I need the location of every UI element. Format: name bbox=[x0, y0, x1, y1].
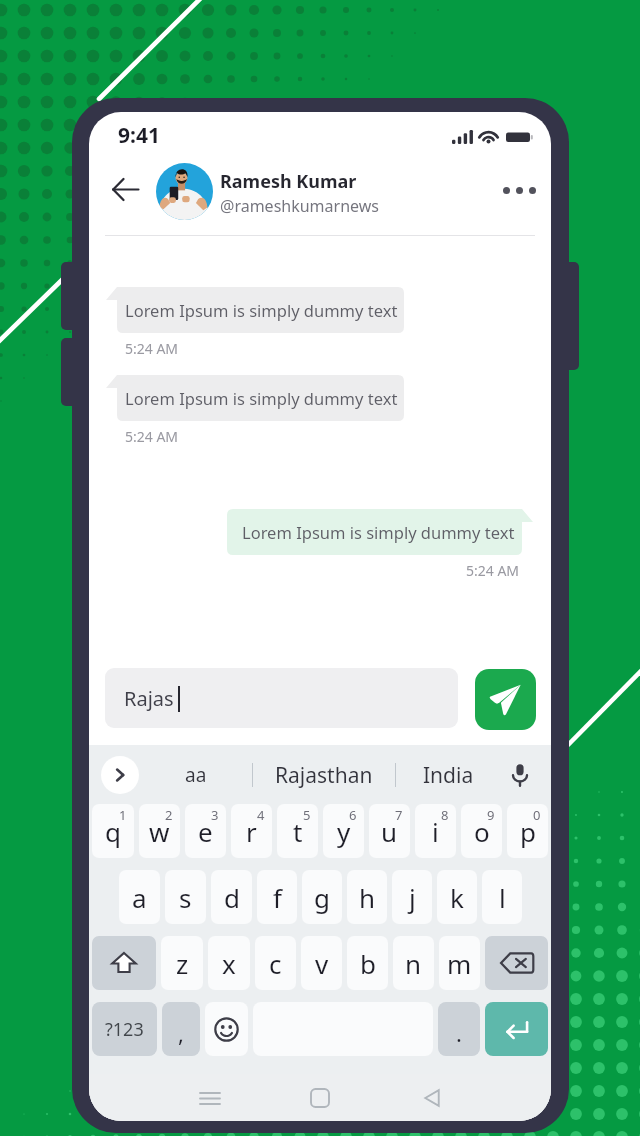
button[interactable]: i bbox=[415, 804, 456, 858]
staticText: b bbox=[360, 946, 376, 981]
button[interactable]: p bbox=[507, 804, 548, 858]
staticText: d bbox=[224, 880, 240, 915]
button[interactable]: r bbox=[231, 804, 272, 858]
button[interactable]: . bbox=[438, 1002, 480, 1056]
button[interactable]: y bbox=[323, 804, 364, 858]
staticText: l bbox=[499, 880, 506, 915]
button[interactable]: s bbox=[165, 870, 206, 924]
button[interactable]: Enter bbox=[485, 1002, 548, 1056]
button[interactable]: India bbox=[396, 755, 501, 795]
button[interactable]: h bbox=[347, 870, 387, 924]
button[interactable]: a bbox=[119, 870, 160, 924]
button[interactable]: c bbox=[255, 936, 296, 990]
button[interactable]: Lorem Ipsum is simply dummy text bbox=[227, 509, 533, 555]
staticText: r bbox=[246, 814, 257, 849]
button[interactable]: f bbox=[257, 870, 297, 924]
staticText: 6 bbox=[349, 806, 357, 824]
button[interactable]: Recent apps bbox=[187, 1075, 233, 1121]
staticText: q bbox=[105, 814, 121, 849]
staticText: Lorem Ipsum is simply dummy text bbox=[242, 521, 515, 543]
button[interactable]: u bbox=[369, 804, 410, 858]
button[interactable]: k bbox=[437, 870, 477, 924]
button[interactable]: Backspace bbox=[485, 936, 548, 990]
button[interactable]: More options bbox=[491, 169, 547, 211]
staticText: j bbox=[409, 880, 416, 915]
staticText: x bbox=[222, 946, 236, 981]
button[interactable]: Emoji bbox=[205, 1002, 248, 1056]
staticText: t bbox=[293, 814, 303, 849]
button[interactable]: Send bbox=[475, 669, 536, 730]
staticText: g bbox=[314, 880, 330, 915]
button[interactable]: q bbox=[92, 804, 134, 858]
staticText: u bbox=[381, 814, 398, 849]
button[interactable]: e bbox=[185, 804, 226, 858]
staticText: 1 bbox=[119, 806, 127, 824]
button[interactable]: Voice input bbox=[501, 756, 539, 794]
staticText: 5:24 AM bbox=[466, 561, 520, 580]
staticText: c bbox=[269, 946, 282, 981]
button[interactable]: Lorem Ipsum is simply dummy text bbox=[106, 287, 404, 333]
button[interactable]: t bbox=[277, 804, 318, 858]
button[interactable]: b bbox=[347, 936, 388, 990]
staticText: ?123 bbox=[105, 1017, 144, 1042]
button[interactable]: Shift bbox=[92, 936, 156, 990]
staticText: @rameshkumarnews bbox=[220, 195, 379, 217]
staticText: w bbox=[149, 814, 170, 849]
staticText: Rajas bbox=[124, 685, 174, 712]
button[interactable]: g bbox=[302, 870, 342, 924]
button[interactable]: Rajasthan bbox=[253, 755, 395, 795]
staticText: Lorem Ipsum is simply dummy text bbox=[125, 299, 398, 321]
staticText: . bbox=[456, 1018, 462, 1048]
staticText: o bbox=[474, 814, 490, 849]
staticText: 9:41 bbox=[118, 121, 160, 150]
staticText: 2 bbox=[165, 806, 173, 824]
staticText: y bbox=[337, 814, 351, 849]
staticText: 8 bbox=[441, 806, 449, 824]
staticText: 4 bbox=[257, 806, 265, 824]
staticText: Lorem Ipsum is simply dummy text bbox=[125, 387, 398, 409]
button[interactable]: Back bbox=[409, 1075, 455, 1121]
staticText: a bbox=[132, 880, 147, 915]
staticText: p bbox=[520, 814, 536, 849]
button[interactable]: Back bbox=[104, 168, 146, 210]
staticText: Rajasthan bbox=[275, 761, 373, 790]
staticText: India bbox=[423, 761, 474, 790]
button[interactable]: Expand toolbar bbox=[101, 756, 139, 794]
button[interactable]: w bbox=[139, 804, 180, 858]
button[interactable]: n bbox=[393, 936, 434, 990]
staticText: 7 bbox=[395, 806, 403, 824]
staticText: Ramesh Kumar bbox=[220, 169, 357, 194]
staticText: z bbox=[176, 946, 189, 981]
staticText: 9 bbox=[487, 806, 495, 824]
staticText: 5:24 AM bbox=[125, 339, 179, 358]
staticText: 5:24 AM bbox=[125, 427, 179, 446]
button[interactable]: aa bbox=[139, 755, 252, 795]
button[interactable]: Lorem Ipsum is simply dummy text bbox=[106, 375, 404, 421]
staticText: , bbox=[178, 1018, 184, 1048]
button[interactable]: o bbox=[461, 804, 502, 858]
staticText: v bbox=[315, 946, 329, 981]
staticText: 0 bbox=[533, 806, 541, 824]
button[interactable]: ?123 bbox=[92, 1002, 157, 1056]
staticText: m bbox=[447, 946, 472, 981]
staticText: aa bbox=[185, 762, 207, 788]
staticText: e bbox=[198, 814, 213, 849]
button[interactable]: d bbox=[211, 870, 252, 924]
staticText: 5 bbox=[303, 806, 311, 824]
button[interactable]: m bbox=[439, 936, 480, 990]
button[interactable]: z bbox=[161, 936, 203, 990]
button[interactable]: x bbox=[208, 936, 250, 990]
staticText: k bbox=[450, 880, 464, 915]
staticText: 3 bbox=[211, 806, 219, 824]
staticText: n bbox=[405, 946, 422, 981]
button[interactable]: l bbox=[482, 870, 522, 924]
staticText: i bbox=[432, 814, 439, 849]
button[interactable]: v bbox=[301, 936, 342, 990]
button[interactable]: Rajas bbox=[105, 668, 458, 728]
staticText: h bbox=[359, 880, 376, 915]
button[interactable]: Home bbox=[297, 1075, 343, 1121]
staticText: s bbox=[179, 880, 192, 915]
button[interactable]: , bbox=[162, 1002, 200, 1056]
button[interactable]: j bbox=[392, 870, 432, 924]
